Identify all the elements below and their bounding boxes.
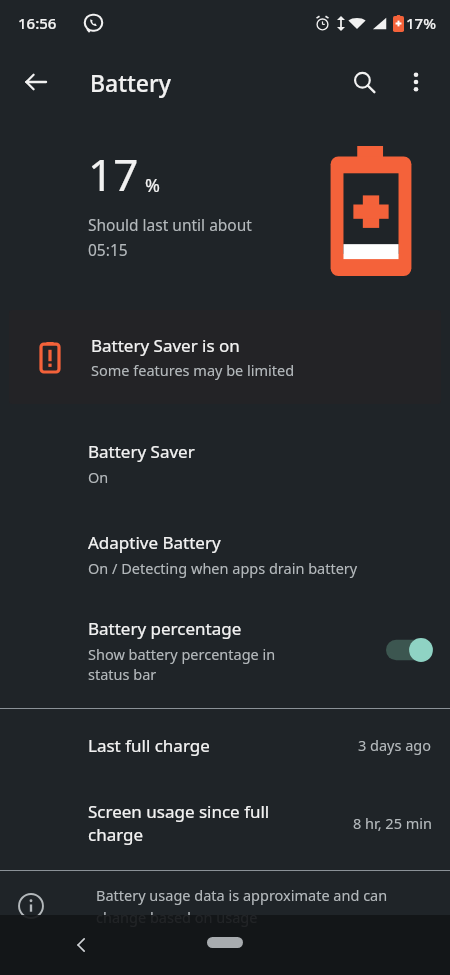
staticText: % bbox=[145, 173, 160, 198]
staticText: status bar bbox=[88, 664, 157, 684]
staticText: Last full charge bbox=[88, 734, 210, 757]
staticText: Battery Saver bbox=[88, 440, 195, 463]
staticText: Battery usage data is approximate and ca… bbox=[96, 885, 388, 905]
staticText: 8 hr, 25 min bbox=[353, 813, 432, 833]
staticText: 3 days ago bbox=[358, 735, 432, 755]
button[interactable]: Back bbox=[62, 925, 102, 965]
staticText: change based on usage bbox=[96, 907, 258, 927]
staticText: Some features may be limited bbox=[91, 360, 295, 380]
staticText: 17% bbox=[406, 13, 436, 33]
button[interactable]: Adaptive Battery bbox=[0, 509, 450, 600]
staticText: Battery percentage bbox=[88, 617, 242, 640]
button[interactable]: Screen usage since full charge bbox=[0, 781, 450, 864]
button[interactable]: Battery Saver is on bbox=[9, 310, 441, 404]
staticText: Battery bbox=[90, 67, 171, 98]
button[interactable]: More options bbox=[392, 58, 440, 106]
staticText: 05:15 bbox=[88, 239, 128, 260]
staticText: Screen usage since full charge bbox=[88, 800, 270, 846]
button[interactable]: Battery percentage toggle bbox=[384, 633, 434, 667]
staticText: On / Detecting when apps drain battery bbox=[88, 558, 358, 578]
button[interactable]: Battery Saver bbox=[0, 418, 450, 509]
staticText: Should last until about bbox=[88, 214, 252, 235]
staticText: Battery Saver is on bbox=[91, 334, 240, 357]
staticText: On bbox=[88, 467, 109, 487]
staticText: 17 bbox=[88, 144, 139, 204]
button[interactable]: Home bbox=[195, 931, 255, 953]
button[interactable]: Back bbox=[12, 58, 60, 106]
button[interactable]: Search bbox=[340, 58, 388, 106]
button[interactable]: Last full charge bbox=[0, 709, 450, 781]
button[interactable]: Battery percentage bbox=[0, 600, 450, 700]
staticText: Adaptive Battery bbox=[88, 531, 221, 554]
staticText: Show battery percentage in bbox=[88, 644, 276, 664]
staticText: 16:56 bbox=[18, 13, 57, 33]
